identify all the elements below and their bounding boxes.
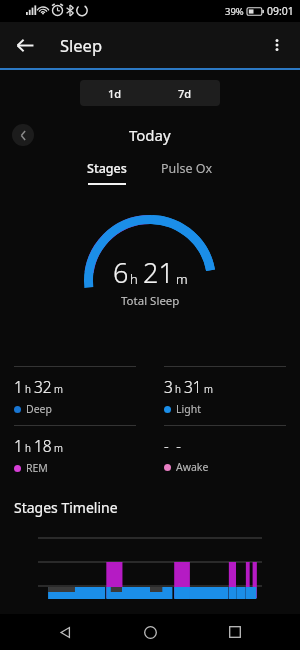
staticText: 21 [143,254,174,291]
staticText: Stages Timeline [14,498,118,517]
staticText: Sleep [60,34,103,56]
staticText: Deep [26,402,52,416]
staticText: REM [26,461,48,475]
staticText: Pulse Ox [161,160,213,177]
staticText: 09:01 [267,4,294,18]
button[interactable]: Home [137,619,163,645]
staticText: 39% [225,5,244,18]
staticText: Light [176,402,201,416]
staticText: Total Sleep [121,293,180,309]
staticText: Stages [87,160,127,177]
button[interactable]: Back [52,619,78,645]
staticText: 1 [14,376,23,397]
button[interactable]: 7d [150,80,220,106]
button[interactable]: 1d [80,80,150,106]
staticText: 1 [14,435,23,456]
button[interactable]: More options [260,28,294,62]
staticText: Today [129,125,171,145]
staticText: 6 [113,254,129,291]
button[interactable]: Stages [77,160,137,185]
staticText: - - [164,435,181,455]
staticText: m [176,270,188,288]
staticText: m [204,382,213,396]
button[interactable]: 1 [0,366,150,425]
staticText: h [25,382,31,396]
staticText: h [25,441,31,455]
button[interactable]: Back [8,28,42,62]
button[interactable]: Pulse Ox [151,160,223,177]
staticText: 3 [164,376,173,397]
button[interactable]: Previous day [12,124,34,146]
button[interactable]: Recents [222,619,248,645]
staticText: m [54,441,63,455]
button[interactable]: 1 [0,425,150,484]
button[interactable]: - - [150,425,300,483]
staticText: m [54,382,63,396]
staticText: 7d [178,86,192,101]
staticText: h [130,270,138,288]
staticText: 18 [34,435,52,456]
button[interactable]: 3 [150,366,300,425]
staticText: 32 [34,376,52,397]
staticText: Awake [176,460,209,474]
staticText: 1d [108,86,122,101]
staticText: 31 [184,376,202,397]
staticText: h [175,382,181,396]
